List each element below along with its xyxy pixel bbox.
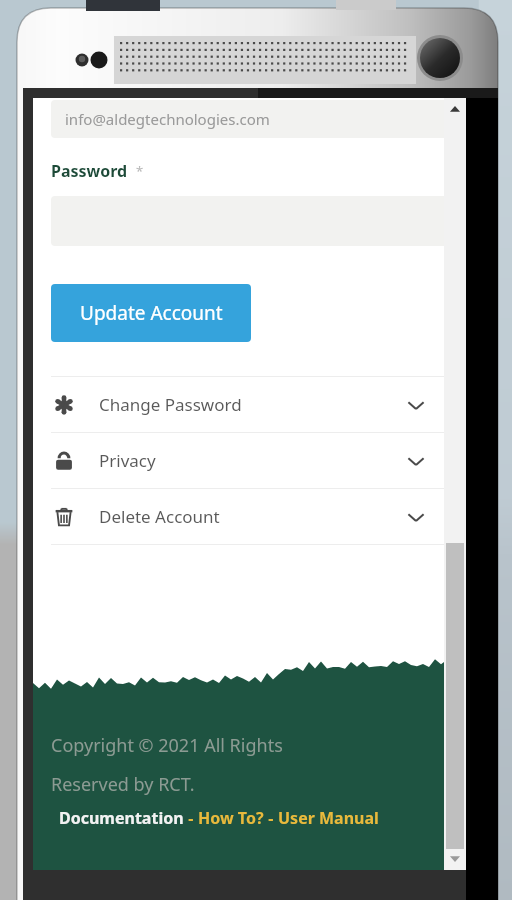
staticText: Privacy <box>99 449 156 472</box>
staticText: - <box>264 807 278 829</box>
staticText: Delete Account <box>99 505 220 528</box>
staticText: How To? <box>198 807 264 829</box>
staticText: Password <box>51 160 128 182</box>
button[interactable]: Update Account <box>51 284 251 342</box>
staticText: User Manual <box>278 807 379 829</box>
button[interactable]: Scroll up <box>444 98 466 120</box>
staticText: Update Account <box>80 300 223 326</box>
button[interactable]: Change Password <box>33 377 466 432</box>
button[interactable]: Delete Account <box>33 489 466 544</box>
staticText: * <box>136 162 144 180</box>
staticText: Reserved by RCT. <box>51 772 195 797</box>
button[interactable]: Documentation <box>59 807 184 829</box>
staticText: - <box>184 807 198 829</box>
button[interactable]: User Manual <box>278 807 379 829</box>
staticText: info@aldegtechnologies.com <box>65 109 270 129</box>
button[interactable]: How To? <box>198 807 264 829</box>
staticText: Documentation <box>59 807 184 829</box>
staticText: Copyright © 2021 All Rights <box>51 733 283 758</box>
button[interactable]: Privacy <box>33 433 466 488</box>
staticText: Change Password <box>99 393 242 416</box>
button[interactable]: Scroll down <box>444 848 466 870</box>
button[interactable]: info@aldegtechnologies.com <box>51 100 448 138</box>
